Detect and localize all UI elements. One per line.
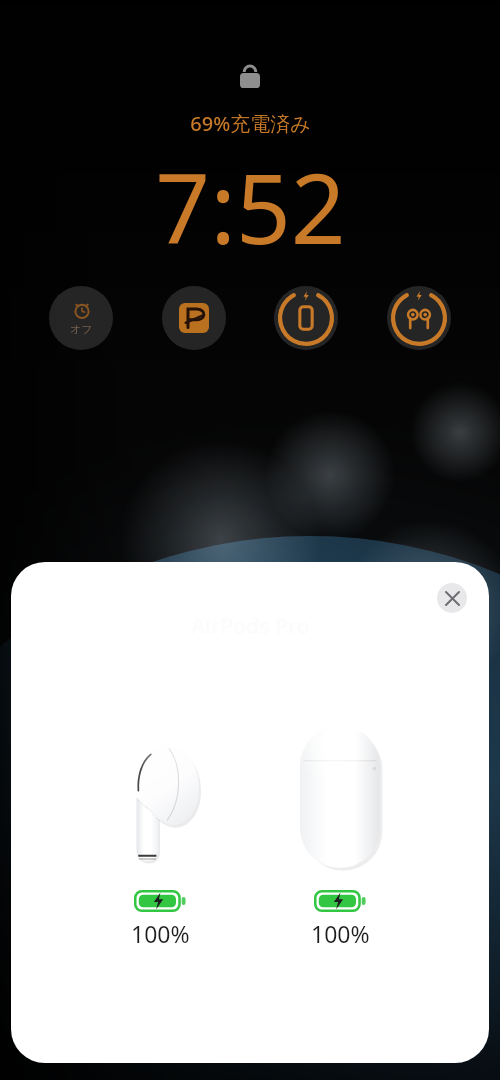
- staticText: オフ: [70, 322, 93, 336]
- other: Locked: [240, 62, 260, 88]
- staticText: 100%: [131, 918, 190, 949]
- staticText: 100%: [311, 918, 370, 949]
- button[interactable]: AirPods battery: [387, 286, 451, 350]
- button[interactable]: Close: [437, 583, 467, 613]
- staticText: 7:52: [155, 141, 346, 272]
- button[interactable]: PayPay: [162, 286, 226, 350]
- staticText: 69%充電済み: [190, 110, 311, 137]
- button[interactable]: Phone battery: [274, 286, 338, 350]
- button[interactable]: Alarm off: [49, 286, 113, 350]
